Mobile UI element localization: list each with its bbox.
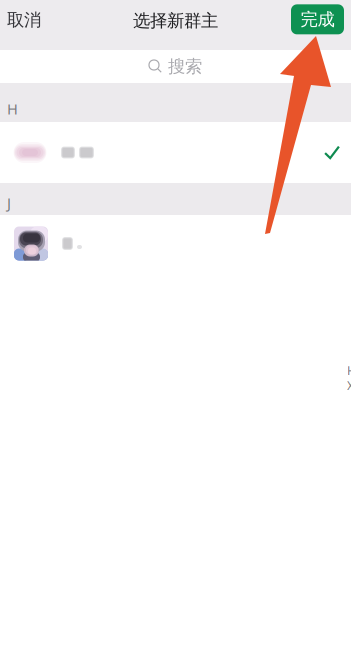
staticText: H: [347, 362, 351, 378]
staticText: 取消: [7, 9, 41, 31]
button[interactable]: 搜索: [0, 50, 351, 83]
staticText: 选择新群主: [133, 10, 218, 31]
staticText: H: [7, 99, 18, 118]
button[interactable]: [0, 215, 351, 272]
button[interactable]: 取消: [0, 4, 55, 46]
button[interactable]: [0, 122, 351, 183]
staticText: 搜索: [168, 56, 202, 77]
staticText: X: [347, 377, 351, 393]
button[interactable]: 完成: [291, 4, 351, 34]
staticText: 完成: [300, 9, 334, 30]
staticText: J: [7, 193, 11, 212]
